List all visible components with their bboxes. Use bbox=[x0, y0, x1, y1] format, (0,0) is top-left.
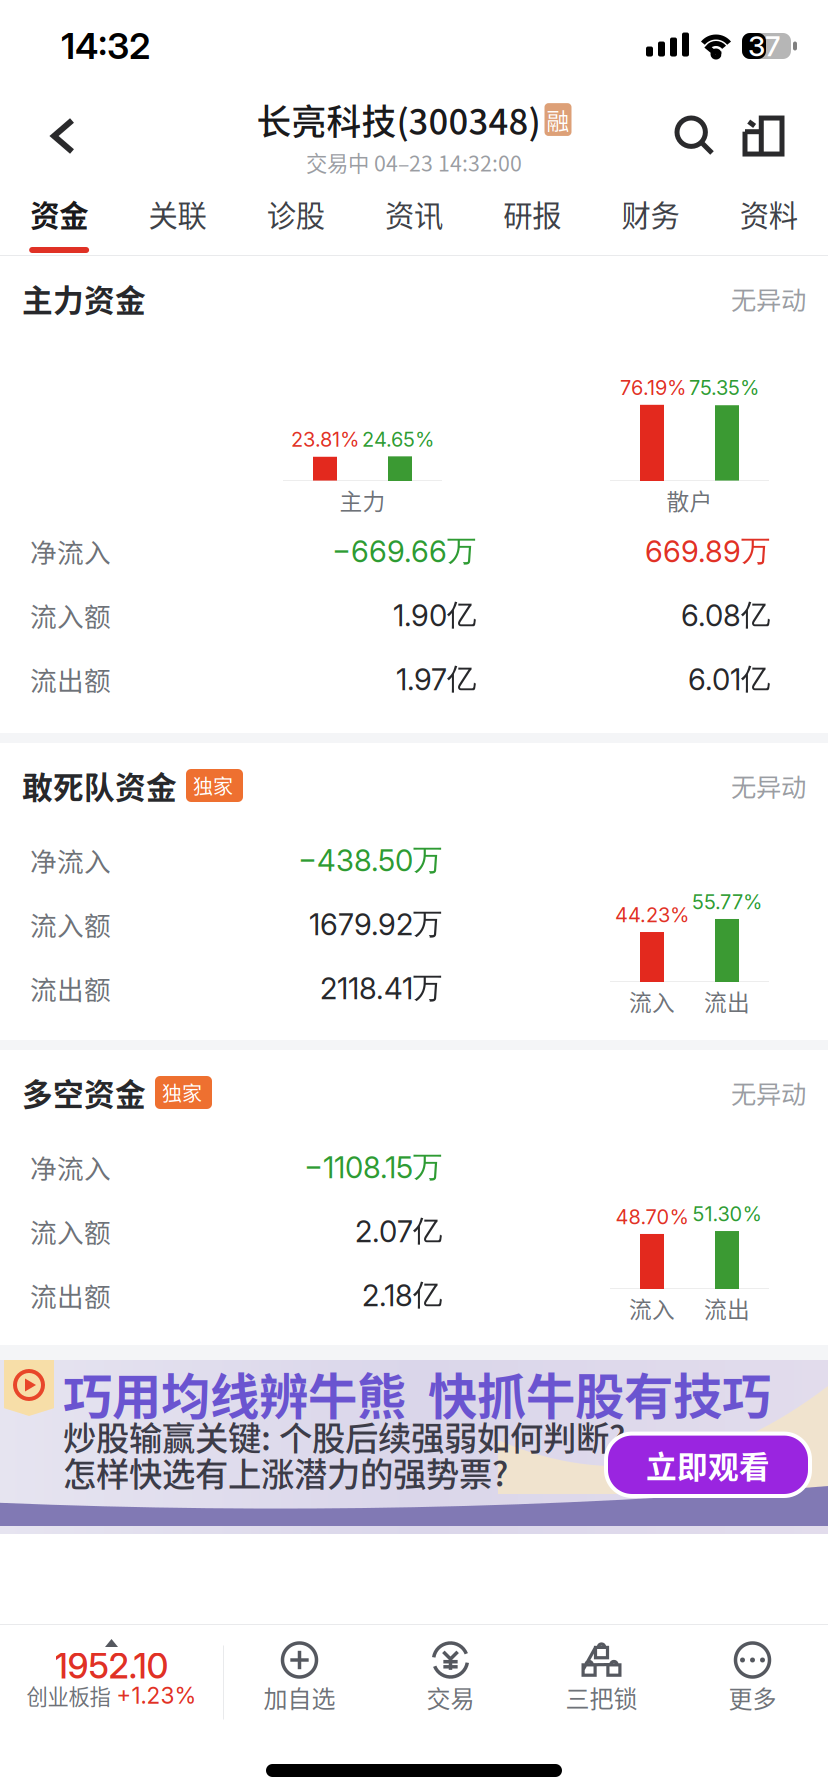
staticText: 炒股输赢关键: 个股后续强弱如何判断? bbox=[63, 1412, 625, 1460]
staticText: 无异动 bbox=[731, 767, 806, 804]
staticText: 无异动 bbox=[731, 1074, 806, 1111]
staticText: 76.19% bbox=[620, 376, 686, 400]
staticText: −1108.15万 bbox=[304, 1148, 442, 1185]
staticText: 2118.41万 bbox=[320, 969, 442, 1006]
staticText: 75.35% bbox=[689, 376, 759, 400]
staticText: 流入 bbox=[629, 985, 675, 1017]
staticText: 多空资金 bbox=[22, 1070, 146, 1115]
staticText: 流入额 bbox=[30, 905, 111, 943]
staticText: 1.90亿 bbox=[393, 596, 476, 633]
staticText: 1952.10 bbox=[54, 1645, 168, 1687]
staticText: 散户 bbox=[666, 484, 712, 516]
button[interactable]: 更多 bbox=[677, 1625, 828, 1740]
button[interactable]: Back bbox=[0, 92, 102, 180]
staticText: 流出额 bbox=[30, 660, 111, 698]
button[interactable]: 交易 bbox=[375, 1625, 526, 1740]
staticText: 三把锁 bbox=[565, 1680, 637, 1715]
button[interactable]: 加自选 bbox=[224, 1625, 375, 1740]
staticText: 净流入 bbox=[30, 1148, 111, 1186]
staticText: 2.07亿 bbox=[355, 1212, 442, 1249]
staticText: 37 bbox=[748, 29, 781, 63]
staticText: 44.23% bbox=[615, 903, 689, 927]
staticText: 流出额 bbox=[30, 969, 111, 1007]
staticText: 流入额 bbox=[30, 1212, 111, 1250]
staticText: 关联 bbox=[148, 192, 206, 235]
staticText: 交易中 04–23 14:32:00 bbox=[306, 147, 522, 178]
button[interactable]: 财务 bbox=[591, 180, 710, 255]
button[interactable]: 研报 bbox=[473, 180, 591, 255]
staticText: 财务 bbox=[622, 192, 680, 235]
staticText: 资讯 bbox=[385, 192, 443, 235]
staticText: 流入 bbox=[629, 1292, 675, 1324]
staticText: 独家 bbox=[162, 1078, 202, 1107]
staticText: +1.23% bbox=[116, 1682, 196, 1709]
staticText: 51.30% bbox=[692, 1202, 761, 1226]
staticText: 24.65% bbox=[362, 427, 434, 451]
staticText: 加自选 bbox=[263, 1680, 335, 1715]
staticText: 资料 bbox=[740, 192, 798, 235]
staticText: 6.08亿 bbox=[681, 596, 770, 633]
staticText: 1.97亿 bbox=[396, 660, 476, 697]
button[interactable]: 资料 bbox=[710, 180, 828, 255]
staticText: 独家 bbox=[193, 771, 233, 800]
staticText: 23.81% bbox=[291, 427, 359, 451]
staticText: 1679.92万 bbox=[309, 905, 442, 942]
staticText: 主力 bbox=[339, 484, 385, 516]
button[interactable]: 诊股 bbox=[237, 180, 355, 255]
staticText: 巧用均线辨牛熊 快抓牛股有技巧 bbox=[63, 1357, 771, 1429]
button[interactable]: Search bbox=[655, 92, 745, 180]
staticText: 669.89万 bbox=[645, 532, 770, 569]
staticText: 流出 bbox=[704, 985, 750, 1017]
staticText: 交易 bbox=[426, 1680, 474, 1715]
button[interactable]: News and reports bbox=[745, 92, 828, 180]
staticText: 无异动 bbox=[731, 280, 806, 317]
staticText: 资金 bbox=[30, 192, 88, 235]
staticText: −438.50万 bbox=[298, 841, 442, 878]
staticText: 融 bbox=[546, 103, 569, 136]
staticText: 研报 bbox=[503, 192, 561, 235]
staticText: 流入额 bbox=[30, 596, 111, 634]
staticText: −669.66万 bbox=[332, 532, 476, 569]
button[interactable]: 关联 bbox=[118, 180, 237, 255]
staticText: 敢死队资金 bbox=[22, 763, 177, 808]
staticText: 6.01亿 bbox=[688, 660, 770, 697]
staticText: 48.70% bbox=[615, 1205, 688, 1229]
staticText: 流出额 bbox=[30, 1276, 111, 1314]
staticText: 流出 bbox=[704, 1292, 750, 1324]
staticText: 55.77% bbox=[692, 890, 762, 914]
button[interactable]: 巧用均线辨牛熊 快抓牛股有技巧 bbox=[0, 1364, 828, 1530]
staticText: 长亮科技(300348) bbox=[256, 94, 540, 145]
staticText: 净流入 bbox=[30, 532, 111, 570]
staticText: 怎样快选有上涨潜力的强势票? bbox=[63, 1448, 508, 1496]
staticText: 2.18亿 bbox=[362, 1276, 442, 1313]
staticText: 创业板指 bbox=[26, 1680, 110, 1711]
button[interactable]: 1952.10 bbox=[0, 1625, 223, 1740]
staticText: 诊股 bbox=[267, 192, 325, 235]
staticText: 更多 bbox=[728, 1680, 776, 1715]
button[interactable]: 资金 bbox=[0, 180, 118, 255]
staticText: 净流入 bbox=[30, 841, 111, 879]
staticText: 主力资金 bbox=[22, 276, 146, 321]
staticText: 立即观看 bbox=[646, 1443, 770, 1487]
button[interactable]: 资讯 bbox=[355, 180, 473, 255]
button[interactable]: 三把锁 bbox=[526, 1625, 677, 1740]
staticText: 14:32 bbox=[61, 24, 150, 68]
